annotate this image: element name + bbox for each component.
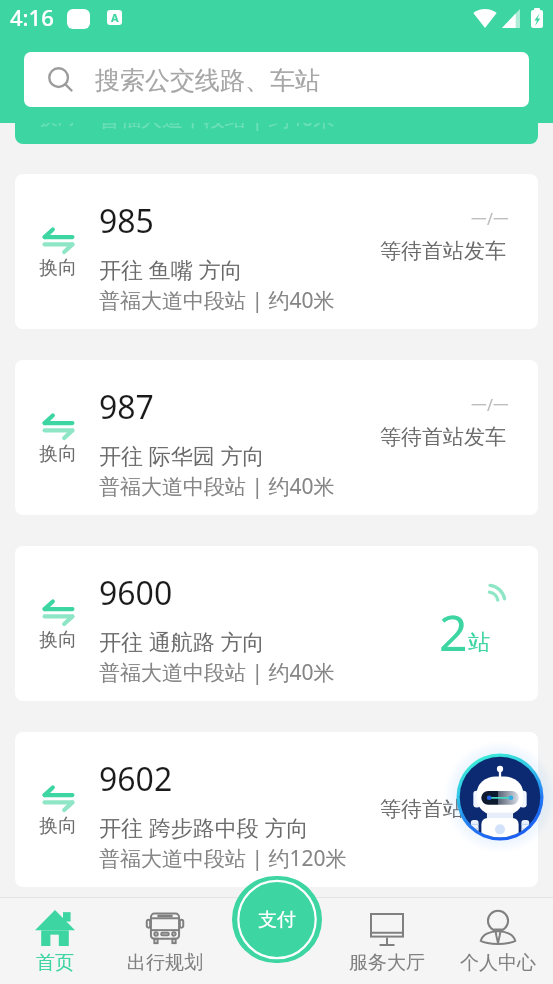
staticText: 服务大厅 [349,951,425,975]
staticText: 9600 [99,571,173,615]
staticText: 等待首站发车 [380,796,506,822]
staticText: 出行规划 [127,951,203,975]
button[interactable]: 个人中心 [442,897,553,984]
staticText: 站 [468,629,490,657]
staticText: 等待首站发车 [380,238,506,264]
button[interactable]: 首页 [0,897,110,984]
button[interactable]: 换向 [15,174,538,329]
button[interactable]: 搜索公交线路、车站 [24,52,529,107]
staticText: A [111,10,119,25]
staticText: 一/一 [471,766,509,788]
staticText: 个人中心 [460,951,536,975]
staticText: 9602 [99,757,173,801]
staticText: 换向 [40,107,76,130]
staticText: 一/一 [471,394,509,416]
staticText: 987 [99,385,154,429]
staticText: 换向 [39,814,77,838]
staticText: 一/一 [471,208,509,230]
button[interactable]: 换向 [15,732,538,887]
staticText: 4:16 [10,2,54,32]
button[interactable]: 服务大厅 [331,897,442,984]
staticText: 换向 [39,256,77,280]
staticText: 首页 [36,951,74,975]
staticText: 开往 通航路 方向 [99,626,265,656]
button[interactable]: 支付 [232,876,322,963]
button[interactable]: 出行规划 [110,897,220,984]
staticText: 2 [439,598,468,666]
staticText: 开往 跨步路中段 方向 [99,812,309,842]
staticText: 普福大道中段站 | 约40米 [99,472,335,501]
staticText: 换向 [39,628,77,652]
button[interactable]: 换向 [15,360,538,515]
staticText: 普福大道中段站 | 约40米 [99,104,335,133]
staticText: 换向 [39,442,77,466]
staticText: 985 [99,199,154,243]
button[interactable]: 换向 [15,546,538,701]
staticText: 普福大道中段站 | 约120米 [99,844,347,873]
staticText: 开往 际华园 方向 [99,440,265,470]
staticText: 开往 鱼嘴 方向 [99,254,243,284]
staticText: 普福大道中段站 | 约40米 [99,286,335,315]
staticText: 普福大道中段站 | 约40米 [99,658,335,687]
staticText: 等待首站发车 [380,424,506,450]
staticText: 搜索公交线路、车站 [95,65,320,96]
staticText: 支付 [258,908,296,932]
button[interactable]: AI assistant [450,747,550,847]
